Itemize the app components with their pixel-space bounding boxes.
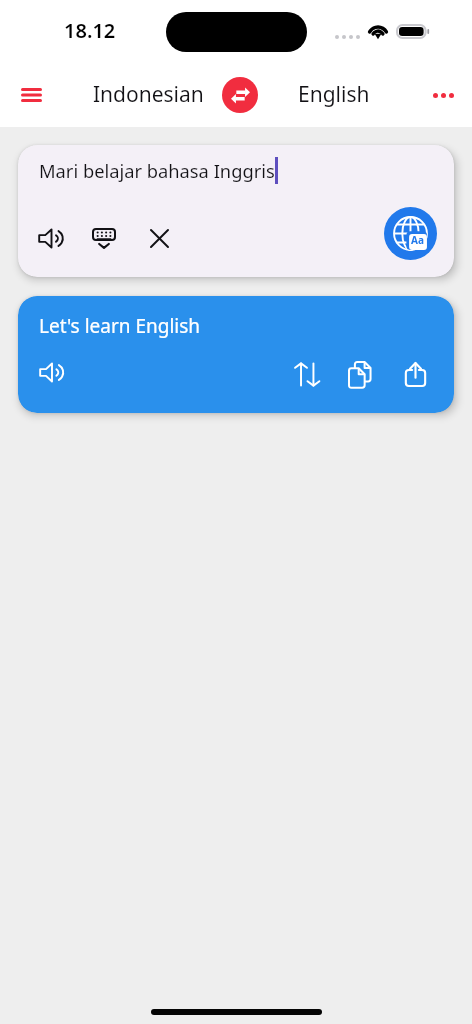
button[interactable]: Copy <box>341 356 377 392</box>
button[interactable]: Clear <box>139 218 179 258</box>
staticText: 18.12 <box>64 17 116 44</box>
staticText: Aa <box>411 233 424 247</box>
button[interactable]: Share <box>397 356 433 392</box>
button[interactable]: English <box>288 72 380 117</box>
button[interactable]: Listen <box>32 352 72 392</box>
button[interactable]: More options <box>423 75 463 115</box>
button[interactable]: Keyboard <box>84 218 124 258</box>
button[interactable]: Translate image text <box>384 207 437 260</box>
staticText: Indonesian <box>93 80 204 109</box>
button[interactable]: Indonesian <box>83 72 214 117</box>
button[interactable]: Listen <box>31 218 71 258</box>
button[interactable]: Swap translation <box>289 356 325 392</box>
staticText: Let's learn English <box>39 313 201 339</box>
staticText: English <box>298 80 370 109</box>
button[interactable]: Menu <box>10 74 52 116</box>
button[interactable]: Swap languages <box>222 77 258 113</box>
staticText: Mari belajar bahasa Inggris <box>39 158 275 183</box>
